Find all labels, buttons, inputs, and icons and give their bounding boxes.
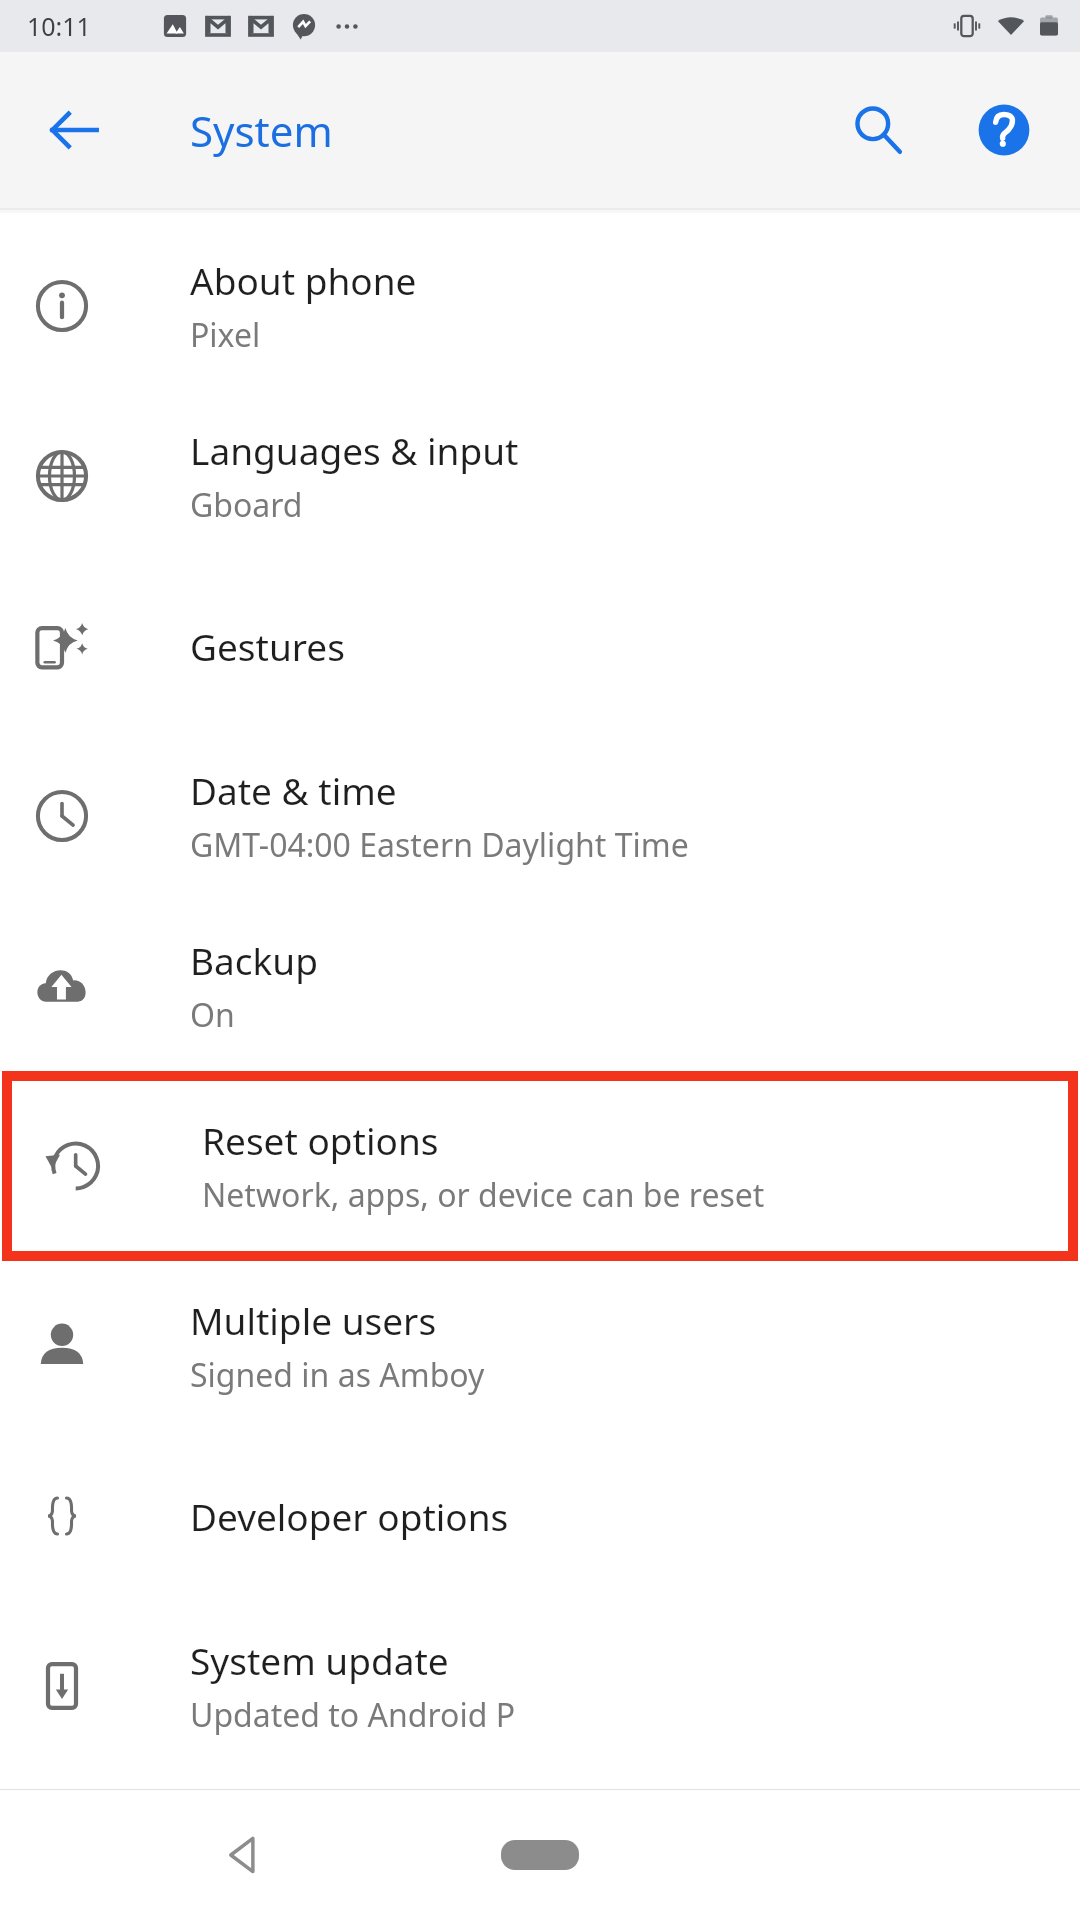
button[interactable]: Gestures (0, 561, 1080, 731)
button[interactable]: Back (26, 82, 122, 178)
staticText: System update (190, 1635, 449, 1685)
button[interactable]: System update (0, 1601, 1080, 1771)
button[interactable]: Help (960, 86, 1048, 174)
staticText: Network, apps, or device can be reset (202, 1173, 765, 1217)
staticText: Languages & input (190, 425, 519, 475)
staticText: Developer options (190, 1491, 509, 1541)
staticText: On (190, 993, 235, 1037)
button[interactable]: Multiple users (0, 1261, 1080, 1431)
staticText: GMT-04:00 Eastern Daylight Time (190, 823, 689, 867)
staticText: Pixel (190, 313, 261, 357)
button[interactable]: Home (470, 1790, 610, 1920)
button[interactable]: Backup (0, 901, 1080, 1071)
button[interactable]: Reset options (12, 1081, 1068, 1251)
staticText: About phone (190, 255, 417, 305)
staticText: 10:11 (27, 9, 91, 43)
staticText: Updated to Android P (190, 1693, 515, 1737)
button[interactable]: Languages & input (0, 391, 1080, 561)
button[interactable]: Date & time (0, 731, 1080, 901)
staticText: System (190, 102, 333, 159)
staticText: Signed in as Amboy (190, 1353, 485, 1397)
button[interactable]: About phone (0, 221, 1080, 391)
button[interactable]: Search (834, 86, 922, 174)
staticText: Gestures (190, 621, 345, 671)
staticText: Reset options (202, 1115, 439, 1165)
button[interactable]: Back (180, 1795, 300, 1915)
staticText: Gboard (190, 483, 303, 527)
staticText: Multiple users (190, 1295, 437, 1345)
staticText: Backup (190, 935, 318, 985)
button[interactable]: Developer options (0, 1431, 1080, 1601)
staticText: Date & time (190, 765, 397, 815)
